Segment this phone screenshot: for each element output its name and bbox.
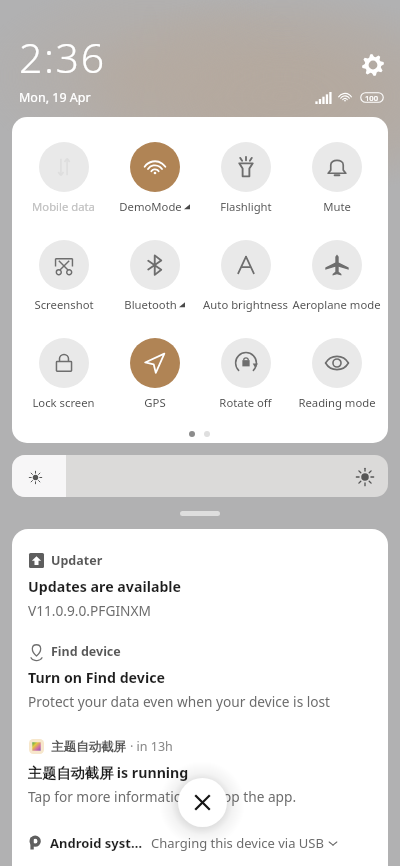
- button[interactable]: Updater: [12, 552, 388, 620]
- button[interactable]: Aeroplane mode: [291, 240, 382, 338]
- staticText: · in 13h: [130, 738, 173, 755]
- staticText: Android syst…: [50, 834, 143, 852]
- button[interactable]: 主题自动截屏: [12, 738, 388, 806]
- staticText: Flashlight: [220, 199, 272, 214]
- staticText: Aeroplane mode: [292, 297, 381, 312]
- button[interactable]: Screenshot: [18, 240, 109, 338]
- staticText: Reading mode: [298, 395, 376, 410]
- button[interactable]: Lock screen: [18, 338, 109, 436]
- staticText: Mute: [323, 199, 351, 214]
- staticText: 主题自动截屏 is running: [28, 763, 189, 782]
- staticText: Mobile data: [32, 199, 95, 214]
- staticText: Updates are available: [28, 577, 182, 596]
- staticText: Rotate off: [219, 395, 272, 410]
- staticText: Tap for more information or stop the app…: [28, 787, 297, 806]
- button[interactable]: Bluetooth: [109, 240, 200, 338]
- staticText: Auto brightness: [203, 297, 288, 312]
- button[interactable]: DemoMode: [109, 142, 200, 240]
- button[interactable]: Android syst…: [12, 827, 388, 859]
- button[interactable]: Auto brightness: [200, 240, 291, 338]
- staticText: 主题自动截屏: [51, 739, 126, 755]
- staticText: Find device: [51, 643, 121, 660]
- button[interactable]: Close: [178, 778, 227, 827]
- staticText: 2:36: [19, 29, 106, 85]
- staticText: DemoMode: [119, 199, 182, 214]
- button[interactable]: Brightness: [12, 455, 388, 497]
- button[interactable]: Flashlight: [200, 142, 291, 240]
- button[interactable]: Settings: [360, 52, 386, 78]
- staticText: Bluetooth: [124, 297, 177, 312]
- staticText: Protect your data even when your device …: [28, 692, 331, 711]
- button[interactable]: Find device: [12, 643, 388, 711]
- staticText: Mon, 19 Apr: [19, 89, 91, 106]
- button[interactable]: Mute: [291, 142, 382, 240]
- staticText: Screenshot: [34, 297, 94, 312]
- staticText: GPS: [144, 395, 166, 410]
- button[interactable]: Reading mode: [291, 338, 382, 436]
- staticText: Updater: [51, 552, 103, 569]
- button[interactable]: Rotate off: [200, 338, 291, 436]
- button[interactable]: GPS: [109, 338, 200, 436]
- staticText: Charging this device via USB: [151, 834, 324, 852]
- staticText: V11.0.9.0.PFGINXM: [28, 601, 151, 620]
- button[interactable]: Mobile data: [18, 142, 109, 240]
- staticText: Turn on Find device: [28, 668, 165, 687]
- staticText: Lock screen: [32, 395, 95, 410]
- staticText: 100: [365, 93, 379, 103]
